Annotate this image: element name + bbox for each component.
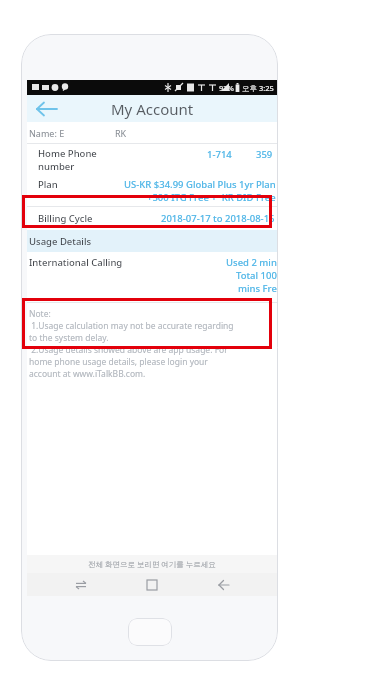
- staticText: RK: [115, 127, 127, 139]
- staticText: 2018-07-17 to 2018-08-16: [161, 212, 275, 225]
- button[interactable]: Home Phone: [27, 144, 277, 175]
- button[interactable]: Home: [128, 618, 172, 646]
- staticText: 1-714: [207, 148, 232, 161]
- staticText: +500 ITG Free + KR DID Free: [147, 191, 276, 204]
- staticText: US-KR $34.99 Global Plus 1yr Plan: [124, 178, 276, 191]
- staticText: Usage Details: [29, 235, 92, 248]
- staticText: 1.Usage calculation may not be accurate …: [29, 320, 234, 332]
- button[interactable]: Recents: [63, 573, 99, 596]
- button[interactable]: Home: [134, 573, 170, 596]
- staticText: 2.Usage details showed above are app usa…: [29, 344, 228, 356]
- button[interactable]: Billing Cycle: [27, 207, 277, 230]
- staticText: My Account: [111, 99, 194, 119]
- button[interactable]: Back: [33, 97, 61, 121]
- button[interactable]: Plan: [27, 175, 277, 206]
- staticText: Billing Cycle: [38, 212, 93, 225]
- staticText: 92%: [219, 83, 234, 93]
- button[interactable]: Back: [206, 573, 242, 596]
- staticText: mins Fre: [238, 282, 277, 295]
- staticText: Used 2 min: [226, 256, 277, 269]
- staticText: Note:: [29, 308, 51, 320]
- staticText: to the system delay.: [29, 332, 109, 344]
- staticText: Home Phone: [38, 147, 97, 160]
- staticText: International Calling: [29, 256, 123, 269]
- staticText: Total 100: [236, 269, 277, 282]
- staticText: 359: [256, 148, 273, 161]
- staticText: Name: E: [29, 127, 65, 139]
- staticText: 오후 3:25: [242, 83, 274, 93]
- staticText: Plan: [38, 178, 58, 191]
- button[interactable]: International Calling: [27, 252, 277, 302]
- staticText: 전체 화면으로 보리면 여기를 누르세요: [88, 559, 216, 569]
- staticText: account at www.iTalkBB.com.: [29, 368, 146, 380]
- staticText: number: [38, 160, 75, 173]
- button[interactable]: Name: E: [27, 122, 277, 143]
- staticText: home phone usage details, please login y…: [29, 356, 208, 368]
